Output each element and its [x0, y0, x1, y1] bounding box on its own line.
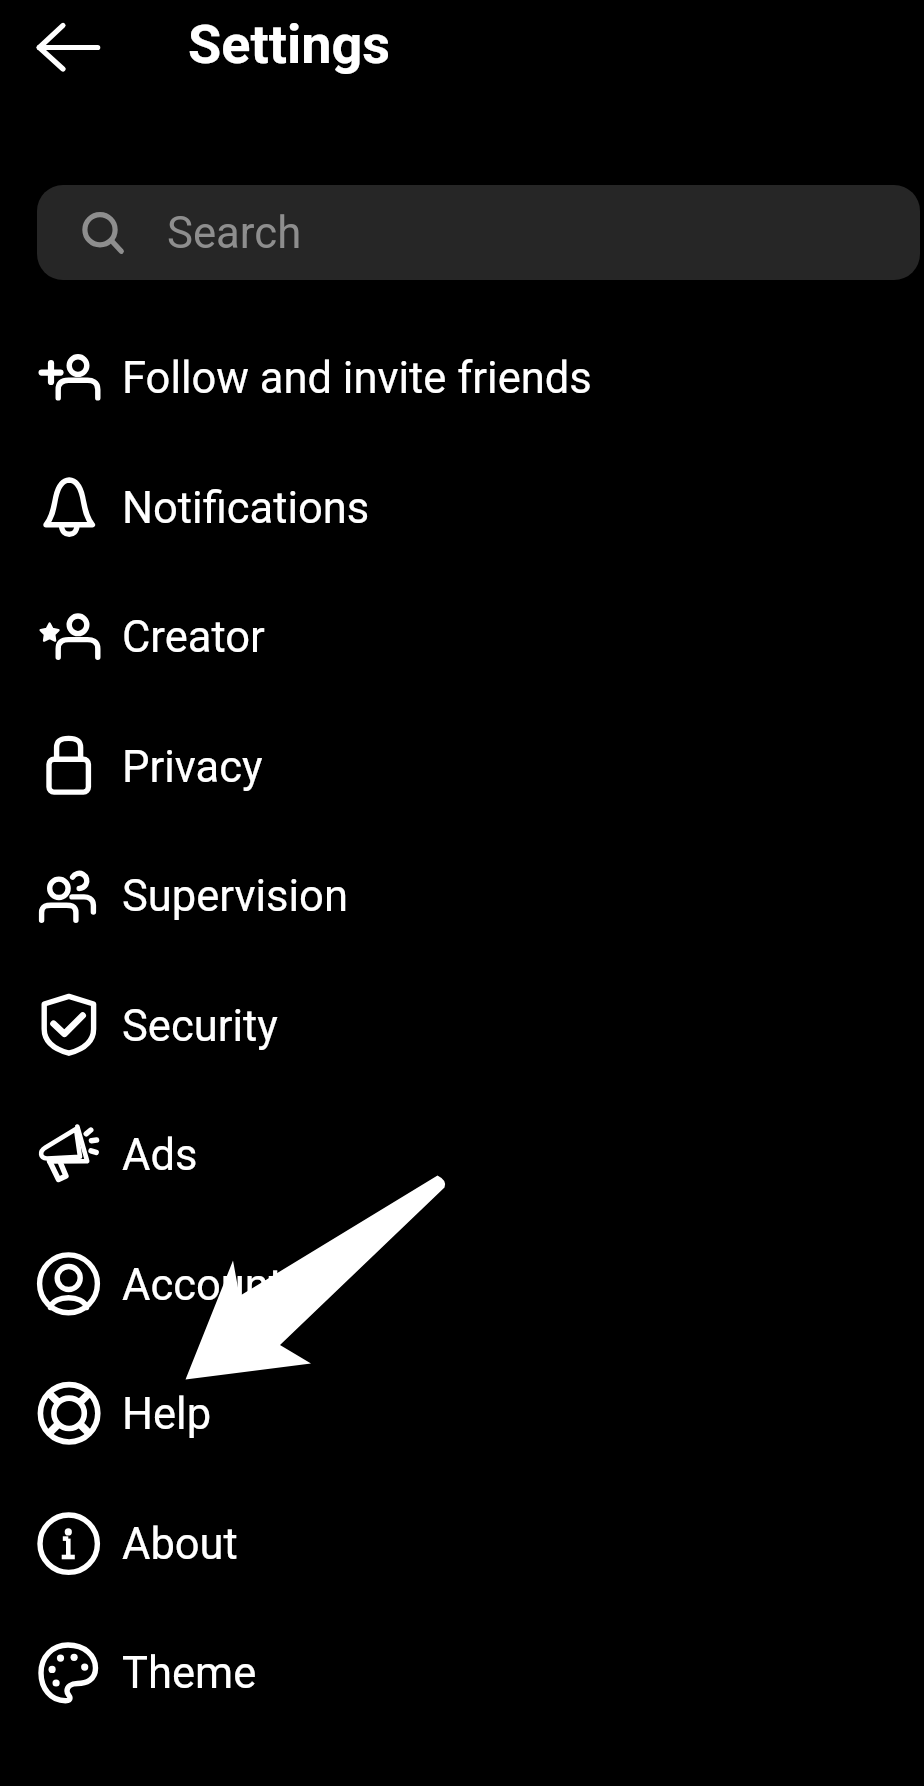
staticText: Follow and invite friends [122, 353, 592, 404]
staticText: Privacy [122, 742, 263, 793]
button[interactable]: Back [14, 8, 110, 88]
button[interactable]: Supervision [0, 829, 924, 959]
button[interactable]: About [0, 1477, 924, 1607]
button[interactable]: Privacy [0, 700, 924, 830]
staticText: Search [167, 207, 302, 258]
staticText: Creator [122, 612, 265, 663]
button[interactable]: Creator [0, 570, 924, 700]
staticText: Ads [122, 1130, 198, 1181]
staticText: Security [122, 1001, 278, 1052]
button[interactable]: Help [0, 1347, 924, 1477]
staticText: Supervision [122, 871, 348, 922]
button[interactable]: Search [37, 185, 920, 280]
button[interactable]: Ads [0, 1088, 924, 1218]
staticText: About [122, 1519, 238, 1570]
button[interactable]: Theme [0, 1606, 924, 1736]
button[interactable]: Notifications [0, 441, 924, 571]
staticText: Notifications [122, 483, 370, 534]
staticText: Settings [188, 13, 391, 76]
button[interactable]: Account [0, 1218, 924, 1348]
button[interactable]: Follow and invite friends [0, 311, 924, 441]
button[interactable]: Security [0, 959, 924, 1089]
staticText: Theme [122, 1648, 257, 1699]
staticText: Account [122, 1260, 283, 1311]
staticText: Help [122, 1389, 212, 1440]
